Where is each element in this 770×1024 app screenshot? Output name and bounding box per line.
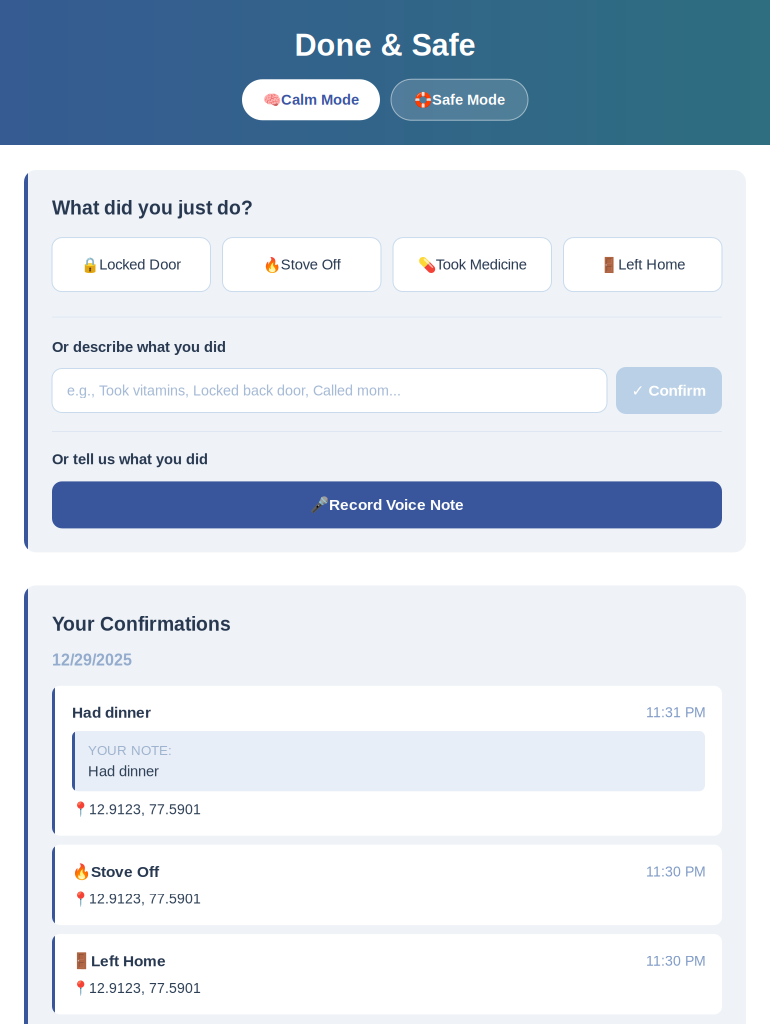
staticText: 11:30 PM [646, 953, 706, 969]
button[interactable]: 🔒Locked Door [52, 238, 210, 292]
staticText: 🚪Left Home [600, 256, 685, 273]
staticText: 🛟Safe Mode [414, 91, 505, 108]
staticText: 🔒Locked Door [81, 256, 181, 273]
staticText: Had dinner [88, 763, 159, 779]
button[interactable]: 🎤Record Voice Note [52, 481, 722, 528]
staticText: Had dinner [72, 704, 151, 721]
staticText: e.g., Took vitamins, Locked back door, C… [67, 382, 401, 398]
staticText: Or describe what you did [52, 339, 226, 355]
staticText: Your Confirmations [52, 613, 231, 635]
staticText: 💊Took Medicine [418, 256, 527, 273]
staticText: 11:31 PM [646, 705, 706, 720]
staticText: 🧠Calm Mode [263, 91, 359, 108]
button[interactable]: 💊Took Medicine [393, 238, 551, 292]
staticText: 12/29/2025 [52, 651, 132, 669]
staticText: YOUR NOTE: [88, 743, 172, 758]
staticText: Or tell us what you did [52, 451, 208, 467]
staticText: 🎤Record Voice Note [310, 496, 464, 514]
staticText: Done & Safe [294, 28, 475, 62]
staticText: 🔥Stove Off [263, 256, 341, 273]
button[interactable]: 🧠Calm Mode [242, 79, 380, 120]
button[interactable]: 🛟Safe Mode [391, 79, 528, 120]
staticText: 📍12.9123, 77.5901 [72, 891, 201, 907]
button[interactable]: 🔥Stove Off [222, 238, 381, 292]
staticText: 🚪Left Home [72, 952, 166, 970]
button[interactable]: ✓ Confirm [616, 367, 722, 414]
staticText: 📍12.9123, 77.5901 [72, 801, 201, 818]
staticText: ✓ Confirm [631, 382, 706, 399]
staticText: 🔥Stove Off [72, 863, 159, 881]
staticText: 11:30 PM [646, 864, 706, 879]
button[interactable]: 🚪Left Home [563, 238, 722, 292]
staticText: What did you just do? [52, 197, 253, 219]
staticText: 📍12.9123, 77.5901 [72, 980, 201, 996]
